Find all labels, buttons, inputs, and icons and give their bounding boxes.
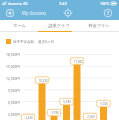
staticText: 3,000円 — [7, 112, 20, 117]
button[interactable]: Help — [103, 8, 113, 18]
staticText: ホーム — [13, 23, 26, 28]
button[interactable]: Menu — [5, 8, 15, 18]
staticText: 過去6ヶ月 — [38, 39, 55, 44]
staticText: 9,000円 — [7, 88, 20, 93]
staticText: My docomo — [22, 10, 47, 16]
staticText: 請求予定金額 — [13, 40, 34, 44]
button[interactable]: 料金プラン — [79, 20, 119, 31]
staticText: docomo — [8, 1, 22, 6]
staticText: 5,540 — [63, 100, 71, 104]
staticText: 料金プラン — [88, 23, 110, 28]
staticText: 3,780 — [51, 111, 59, 115]
staticText: 請求グラフ — [48, 23, 70, 28]
staticText: 100% — [100, 1, 110, 6]
staticText: ? — [107, 10, 110, 16]
staticText: 7:43 — [59, 1, 67, 6]
button[interactable]: ホーム — [0, 20, 39, 31]
staticText: 15,000円 — [6, 64, 20, 69]
button[interactable]: Settings — [63, 8, 73, 18]
staticText: 4G — [23, 1, 28, 6]
staticText: 2,260 — [87, 115, 95, 119]
staticText: 5,020 — [100, 102, 108, 106]
staticText: 12,000円 — [6, 76, 20, 81]
button[interactable]: 請求グラフ — [39, 20, 79, 31]
staticText: 2,420 — [25, 116, 33, 120]
staticText: 6,000円 — [7, 100, 20, 105]
staticText: 18,000円 — [6, 52, 20, 57]
staticText: 10,230 — [38, 79, 48, 83]
staticText: 17,380 — [73, 60, 83, 64]
